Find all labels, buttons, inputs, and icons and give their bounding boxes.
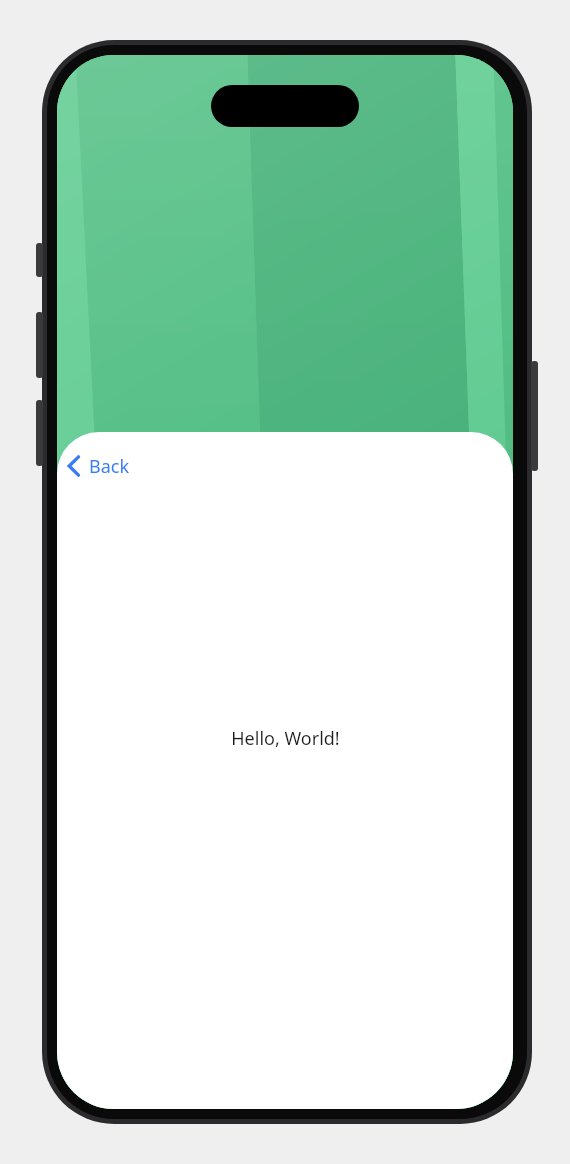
staticText: Back bbox=[89, 454, 130, 479]
staticText: Hello, World! bbox=[231, 726, 340, 751]
other: Back bbox=[66, 454, 82, 478]
button[interactable]: Back bbox=[59, 444, 169, 488]
